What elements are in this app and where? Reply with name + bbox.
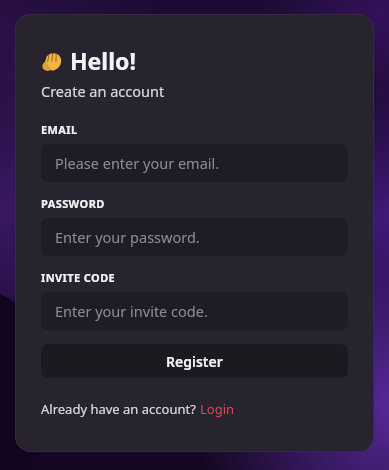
button[interactable]: Register <box>41 344 348 378</box>
staticText: Already have an account? <box>41 400 200 418</box>
staticText: PASSWORD <box>41 196 105 211</box>
staticText: Register <box>166 352 223 371</box>
staticText: Hello! <box>70 45 136 76</box>
staticText: Login <box>200 400 235 418</box>
staticText: INVITE CODE <box>41 270 116 285</box>
other: Waving hand <box>41 50 63 72</box>
button[interactable]: Enter your password. <box>41 218 348 256</box>
staticText: Enter your password. <box>55 227 200 247</box>
staticText: Please enter your email. <box>55 153 220 173</box>
staticText: Enter your invite code. <box>55 301 208 321</box>
staticText: Create an account <box>41 81 165 101</box>
button[interactable]: Login <box>200 400 235 418</box>
staticText: EMAIL <box>41 122 78 137</box>
button[interactable]: Enter your invite code. <box>41 292 348 330</box>
button[interactable]: Please enter your email. <box>41 144 348 182</box>
